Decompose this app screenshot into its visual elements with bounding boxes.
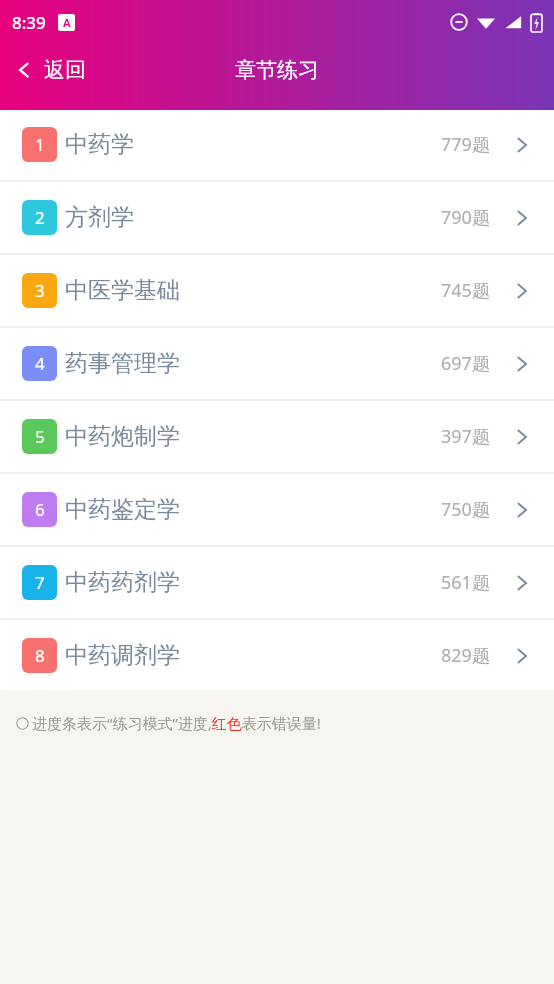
staticText: 中药鉴定学	[65, 495, 180, 524]
button[interactable]: 8	[0, 621, 554, 690]
staticText: 779题	[441, 132, 490, 157]
other: Wi-Fi	[477, 13, 495, 31]
button[interactable]: 3	[0, 256, 554, 325]
staticText: 6	[35, 498, 45, 521]
staticText: 中药学	[65, 130, 134, 159]
button[interactable]: 返回	[0, 51, 100, 89]
staticText: 进度条表示“练习模式”进度,红色表示错误量!	[32, 713, 321, 733]
staticText: 返回	[44, 57, 86, 83]
staticText: 3	[35, 279, 45, 302]
staticText: 697题	[441, 351, 490, 376]
staticText: 方剂学	[65, 203, 134, 232]
staticText: 561题	[441, 570, 490, 595]
other: Do not disturb	[450, 13, 468, 31]
staticText: 745题	[441, 278, 490, 303]
staticText: 4	[35, 352, 45, 375]
staticText: 中药药剂学	[65, 568, 180, 597]
staticText: 中药炮制学	[65, 422, 180, 451]
staticText: 8:39	[12, 11, 46, 34]
staticText: 5	[35, 425, 45, 448]
other: Signal strength	[504, 13, 522, 31]
staticText: 750题	[441, 497, 490, 522]
staticText: 药事管理学	[65, 349, 180, 378]
other: Battery charging	[531, 13, 542, 32]
button[interactable]: 7	[0, 548, 554, 617]
button[interactable]: 4	[0, 329, 554, 398]
staticText: 7	[35, 571, 45, 594]
button[interactable]: 6	[0, 475, 554, 544]
staticText: 397题	[441, 424, 490, 449]
staticText: 790题	[441, 205, 490, 230]
staticText: 2	[35, 206, 45, 229]
staticText: 829题	[441, 643, 490, 668]
staticText: 中医学基础	[65, 276, 180, 305]
button[interactable]: 1	[0, 110, 554, 179]
staticText: 章节练习	[235, 57, 319, 83]
staticText: 1	[35, 133, 45, 156]
button[interactable]: 5	[0, 402, 554, 471]
button[interactable]: 2	[0, 183, 554, 252]
staticText: A	[63, 15, 71, 30]
staticText: 中药调剂学	[65, 641, 180, 670]
staticText: 8	[35, 644, 45, 667]
